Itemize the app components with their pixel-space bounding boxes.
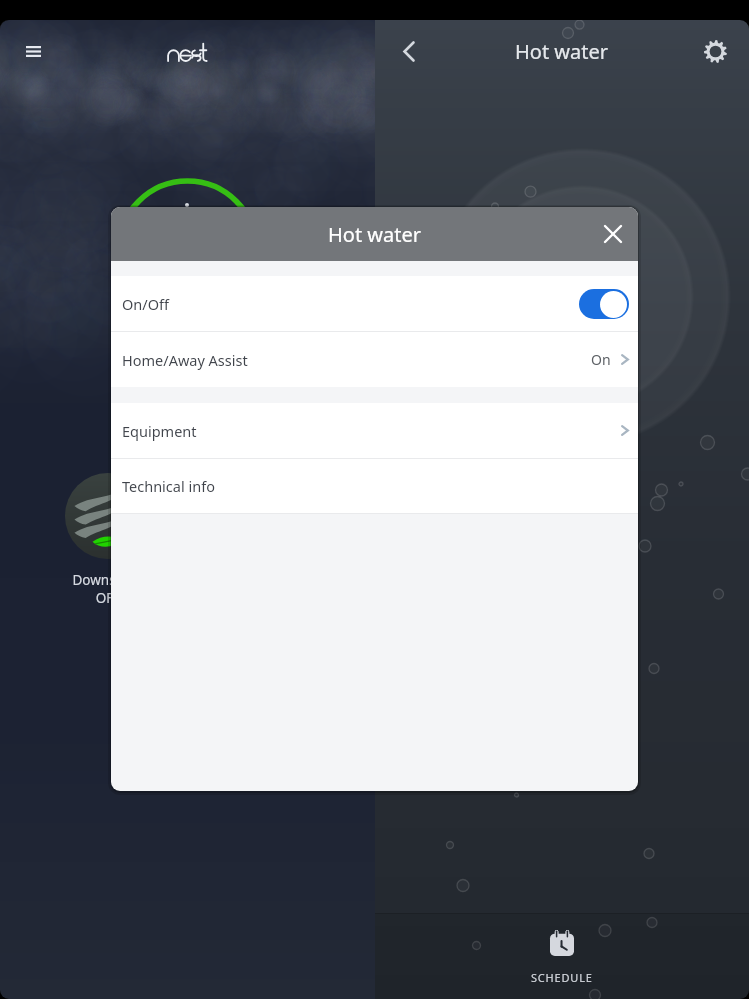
button[interactable]: Home/Away Assist bbox=[111, 332, 638, 387]
button[interactable]: On/Off bbox=[111, 276, 638, 331]
button[interactable]: Settings bbox=[693, 29, 737, 73]
button[interactable]: Equipment bbox=[111, 403, 638, 458]
staticText: Home/Away Assist bbox=[122, 350, 248, 370]
staticText: Downstairs OFF bbox=[58, 571, 158, 607]
staticText: Technical info bbox=[122, 476, 215, 496]
staticText: On bbox=[591, 350, 611, 369]
button[interactable]: SCHEDULE bbox=[375, 913, 749, 999]
staticText: SCHEDULE bbox=[531, 970, 593, 985]
staticText: Equipment bbox=[122, 421, 197, 441]
button[interactable]: Back bbox=[387, 29, 431, 73]
button[interactable]: Technical info bbox=[111, 459, 638, 513]
other: nest bbox=[167, 41, 208, 62]
staticText: Hot water bbox=[515, 38, 609, 65]
button[interactable]: On/Off toggle bbox=[579, 289, 629, 319]
button[interactable]: Downstairs heat link bbox=[65, 473, 151, 559]
button[interactable]: Close bbox=[592, 213, 634, 255]
staticText: Hot water bbox=[328, 221, 422, 248]
staticText: On/Off bbox=[122, 294, 169, 314]
button[interactable]: Menu bbox=[12, 30, 54, 72]
